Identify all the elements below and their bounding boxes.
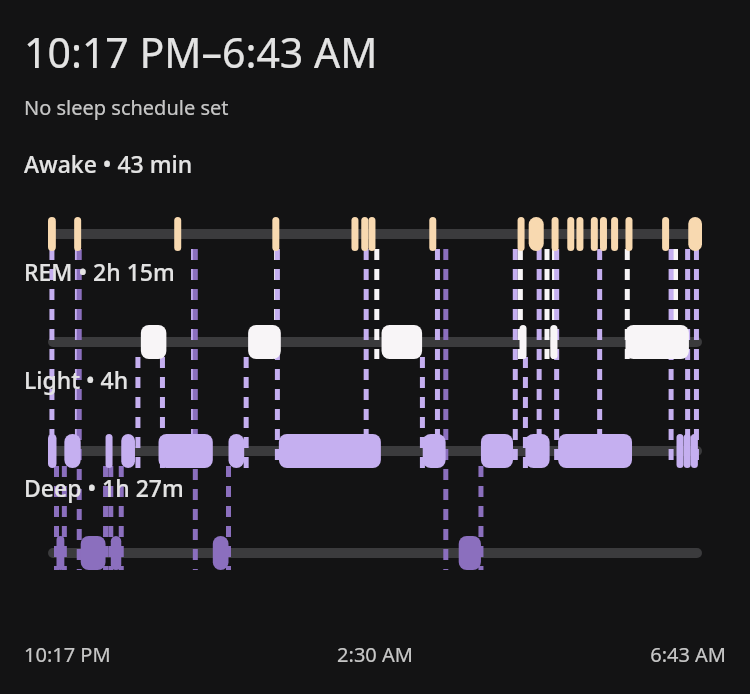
staticText: No sleep schedule set: [24, 94, 229, 121]
staticText: 10:17 PM: [24, 641, 258, 668]
staticText: 10:17 PM–6:43 AM: [24, 24, 378, 80]
staticText: 6:43 AM: [492, 641, 726, 668]
button[interactable]: Light • 4h: [24, 364, 129, 395]
button[interactable]: Awake • 43 min: [24, 148, 193, 179]
button[interactable]: REM • 2h 15m: [24, 256, 175, 287]
button[interactable]: Deep • 1h 27m: [24, 472, 184, 503]
staticText: 2:30 AM: [258, 641, 492, 668]
